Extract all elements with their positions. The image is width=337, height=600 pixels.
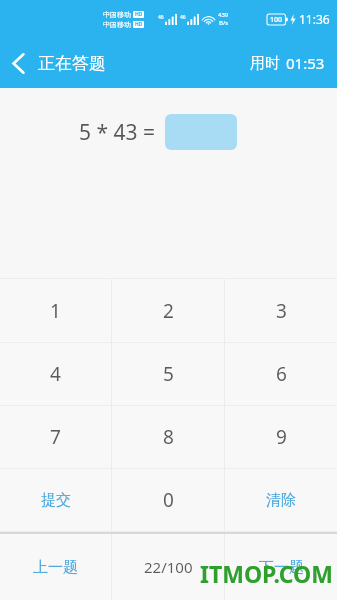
staticText: 9 <box>276 424 287 450</box>
staticText: 11:36 <box>299 11 330 27</box>
staticText: 提交 <box>41 491 71 510</box>
button[interactable] <box>165 114 237 150</box>
staticText: 清除 <box>266 491 296 510</box>
staticText: 正在答题 <box>38 53 106 74</box>
staticText: 上一题 <box>33 558 78 577</box>
staticText: 01:53 <box>286 53 325 73</box>
button[interactable]: 8 <box>112 406 224 468</box>
staticText: 1 <box>50 298 61 324</box>
staticText: 4 <box>50 361 61 387</box>
button[interactable]: 0 <box>112 469 224 531</box>
button[interactable]: 5 <box>112 343 224 405</box>
staticText: B/s <box>219 19 229 27</box>
staticText: 5 * 43 = <box>79 118 155 147</box>
staticText: 439 <box>218 11 229 19</box>
button[interactable]: 3 <box>225 279 337 342</box>
staticText: HD <box>135 21 143 28</box>
staticText: 下一题 <box>259 558 304 577</box>
staticText: 2 <box>163 298 174 324</box>
staticText: 0 <box>163 487 174 513</box>
staticText: 7 <box>50 424 61 450</box>
button[interactable]: Back <box>0 45 116 82</box>
staticText: 3 <box>276 298 287 324</box>
button[interactable]: 9 <box>225 406 337 468</box>
staticText: 8 <box>163 424 174 450</box>
staticText: 5 <box>163 361 174 387</box>
staticText: 用时 <box>250 54 280 73</box>
button[interactable]: 提交 <box>0 469 111 531</box>
staticText: 中国移动 <box>103 20 131 29</box>
button[interactable]: 1 <box>0 279 111 342</box>
staticText: 46 <box>158 14 164 21</box>
button[interactable]: 下一题 <box>225 534 337 600</box>
staticText: 22/100 <box>144 557 193 577</box>
button[interactable]: 7 <box>0 406 111 468</box>
staticText: 46 <box>180 14 186 21</box>
button[interactable]: 2 <box>112 279 224 342</box>
staticText: HD <box>135 11 143 18</box>
staticText: ITMOP.COM <box>200 558 333 589</box>
staticText: 6 <box>276 361 287 387</box>
button[interactable]: 6 <box>225 343 337 405</box>
button[interactable]: 清除 <box>225 469 337 531</box>
button[interactable]: 4 <box>0 343 111 405</box>
button[interactable]: 上一题 <box>0 534 111 600</box>
staticText: 100 <box>270 15 283 25</box>
staticText: 中国移动 <box>103 10 131 19</box>
